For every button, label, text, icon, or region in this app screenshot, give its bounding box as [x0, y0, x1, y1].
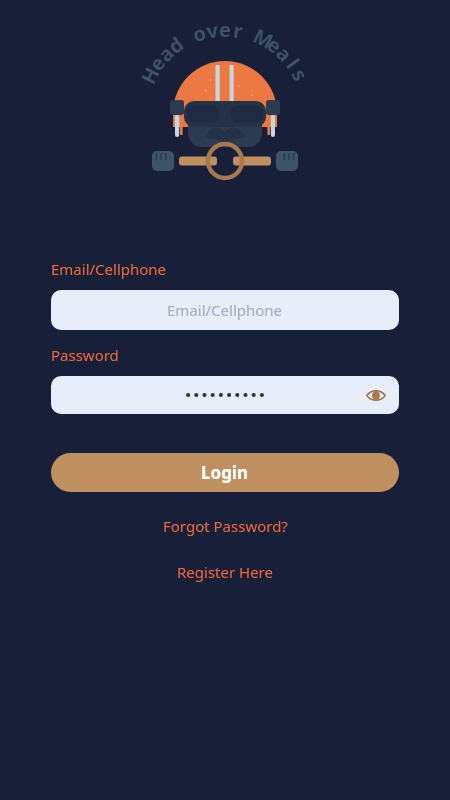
staticText: e: [143, 51, 167, 73]
button[interactable]: Login: [51, 453, 399, 492]
staticText: Register Here: [177, 562, 273, 582]
staticText: M: [251, 22, 277, 50]
staticText: Login: [201, 461, 249, 484]
staticText: e: [265, 31, 287, 55]
staticText: l: [284, 53, 306, 71]
staticText: r: [232, 16, 245, 39]
staticText: Email/Cellphone: [51, 259, 167, 279]
button[interactable]: Register Here: [163, 557, 287, 587]
button[interactable]: Show password: [362, 381, 390, 409]
staticText: e: [219, 16, 231, 38]
staticText: Forgot Password?: [163, 516, 288, 536]
staticText: v: [204, 16, 220, 40]
staticText: Email/Cellphone: [167, 300, 283, 320]
button[interactable]: Show password: [51, 376, 399, 414]
staticText: H: [135, 62, 161, 86]
staticText: o: [189, 18, 208, 43]
button[interactable]: Forgot Password?: [149, 511, 302, 541]
staticText: s: [290, 64, 315, 84]
staticText: a: [274, 40, 298, 64]
staticText: d: [163, 30, 186, 56]
button[interactable]: Email/Cellphone: [51, 290, 399, 330]
staticText: a: [152, 40, 176, 64]
staticText: Password: [51, 345, 119, 365]
